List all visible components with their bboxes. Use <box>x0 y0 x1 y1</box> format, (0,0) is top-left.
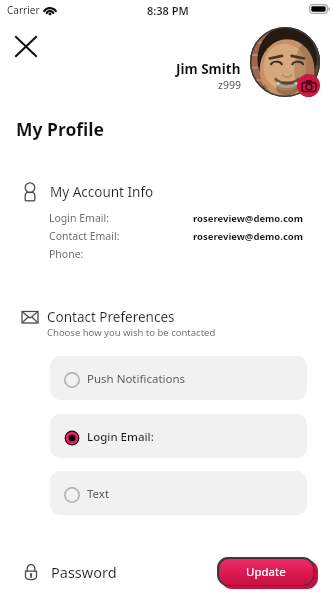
staticText: Text <box>87 486 110 502</box>
button[interactable]: Password <box>25 559 117 585</box>
staticText: Contact Email: <box>49 229 120 243</box>
button[interactable]: Contact Preferences <box>0 308 333 339</box>
button[interactable]: Profile photo <box>250 27 320 97</box>
staticText: Update <box>246 564 286 580</box>
button[interactable]: Close <box>9 28 45 64</box>
button[interactable]: Change photo <box>297 74 320 97</box>
button[interactable]: Login Email: <box>50 414 307 458</box>
staticText: z999 <box>218 78 241 92</box>
staticText: Choose how you wish to be contacted <box>47 326 216 339</box>
staticText: My Account Info <box>50 183 154 201</box>
staticText: Push Notifications <box>87 371 186 387</box>
staticText: Jim Smith <box>176 60 241 78</box>
staticText: Phone: <box>49 247 84 261</box>
button[interactable]: Push Notifications <box>50 356 307 400</box>
staticText: My Profile <box>16 117 104 141</box>
staticText: Password <box>51 562 117 582</box>
staticText: rosereview@demo.com <box>193 212 304 225</box>
button[interactable]: Update <box>219 559 313 585</box>
button[interactable]: My Account Info <box>0 180 333 204</box>
button[interactable]: Text <box>50 471 307 515</box>
staticText: 8:38 PM <box>147 3 189 18</box>
staticText: rosereview@demo.com <box>193 230 304 243</box>
staticText: Login Email: <box>87 429 154 445</box>
staticText: Carrier <box>7 3 40 17</box>
staticText: Login Email: <box>49 211 110 225</box>
staticText: Contact Preferences <box>47 308 175 326</box>
